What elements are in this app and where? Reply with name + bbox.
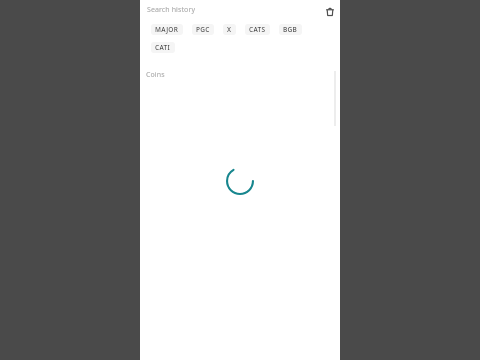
staticText: CATI [155,43,171,52]
button[interactable]: Clear search history [321,3,338,20]
button[interactable]: CATS [245,24,270,35]
staticText: Search history [147,5,196,15]
button[interactable]: X [223,24,236,35]
staticText: PGC [196,25,210,34]
staticText: Coins [146,70,165,80]
staticText: X [227,25,232,34]
button[interactable]: MAJOR [151,24,183,35]
staticText: BGB [283,25,298,34]
button[interactable]: CATI [151,42,175,53]
button[interactable]: BGB [279,24,302,35]
staticText: MAJOR [155,25,179,34]
button[interactable]: PGC [192,24,214,35]
staticText: CATS [249,25,266,34]
